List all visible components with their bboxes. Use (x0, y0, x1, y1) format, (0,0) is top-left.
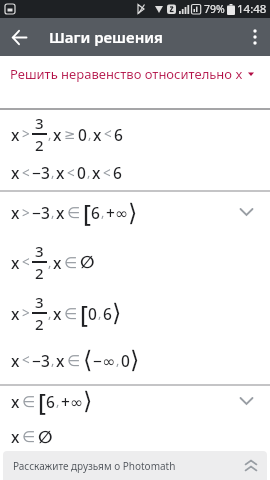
staticText: , (51, 204, 55, 221)
staticText: > (22, 304, 30, 322)
staticText: 6 (113, 162, 122, 183)
button[interactable]: x (0, 192, 270, 232)
staticText: ∈ (22, 428, 36, 445)
staticText: x (11, 252, 20, 273)
staticText: ∈ (22, 393, 36, 410)
staticText: ⟩ (130, 346, 140, 374)
staticText: x (53, 252, 62, 273)
staticText: ⟩ (83, 387, 93, 415)
button[interactable]: x (0, 160, 270, 184)
staticText: +∞ (106, 202, 128, 223)
staticText: x (53, 124, 62, 145)
staticText: x (53, 303, 62, 324)
staticText: ⟩ (128, 199, 138, 227)
staticText: [ (83, 196, 91, 229)
staticText: Решить неравенство относительно x (10, 65, 243, 83)
staticText: x (11, 124, 20, 145)
staticText: 2 (35, 263, 44, 283)
staticText: , (48, 305, 52, 322)
staticText: x (11, 391, 20, 412)
staticText: x (92, 162, 101, 183)
staticText: 6 (91, 202, 100, 223)
button[interactable]: x (0, 111, 270, 157)
staticText: > (22, 204, 30, 222)
staticText: 2 (35, 135, 44, 155)
staticText: 6 (114, 124, 123, 145)
button[interactable]: x (0, 340, 270, 380)
staticText: , (88, 126, 92, 143)
staticText: −3 (32, 162, 50, 183)
staticText: x (11, 426, 20, 447)
staticText: ⟨ (83, 346, 93, 374)
staticText: ≥ (64, 126, 76, 142)
staticText: 79% (204, 2, 225, 16)
staticText: , (51, 164, 55, 181)
staticText: +∞ (61, 391, 83, 412)
staticText: ∈ (64, 305, 78, 322)
staticText: < (103, 164, 111, 182)
staticText: 3 (35, 241, 44, 261)
staticText: x (11, 202, 20, 223)
staticText: 3 (35, 292, 44, 312)
staticText: 0 (88, 303, 97, 324)
staticText: 0 (78, 124, 87, 145)
button[interactable]: Расскажите друзьям о Photomath (3, 451, 267, 480)
staticText: x (11, 350, 20, 371)
staticText: −3 (32, 202, 50, 223)
staticText: x (56, 162, 65, 183)
staticText: > (22, 125, 30, 143)
staticText: < (104, 125, 112, 143)
staticText: x (11, 162, 20, 183)
staticText: [ (38, 385, 46, 417)
staticText: , (56, 393, 60, 410)
staticText: 6 (103, 303, 112, 324)
button[interactable]: x (0, 239, 270, 285)
staticText: x (11, 303, 20, 324)
staticText: Расскажите друзьям о Photomath (13, 459, 176, 473)
staticText: 6 (46, 391, 55, 412)
staticText: 3 (35, 113, 44, 133)
button[interactable]: x (0, 290, 270, 336)
button[interactable]: x (0, 385, 270, 417)
staticText: , (87, 164, 91, 181)
staticText: < (22, 164, 30, 182)
staticText: [ (80, 297, 88, 330)
staticText: ⟩ (112, 299, 122, 327)
staticText: −∞ (93, 350, 115, 371)
staticText: ∅ (80, 252, 95, 272)
staticText: < (22, 253, 30, 271)
staticText: x (56, 202, 65, 223)
staticText: ∅ (38, 427, 53, 447)
staticText: , (116, 352, 120, 369)
staticText: < (67, 164, 75, 182)
staticText: , (48, 126, 52, 143)
staticText: 14:48 (237, 1, 267, 17)
button[interactable]: x (0, 420, 270, 452)
button[interactable]: Решить неравенство относительно x (0, 56, 270, 92)
staticText: ∈ (67, 352, 81, 369)
staticText: −3 (32, 350, 50, 371)
staticText: < (22, 351, 30, 369)
staticText: ∈ (64, 254, 78, 271)
staticText: Шаги решения (49, 27, 163, 47)
staticText: , (98, 305, 102, 322)
staticText: , (101, 204, 105, 221)
staticText: 0 (77, 162, 86, 183)
staticText: x (56, 350, 65, 371)
button[interactable] (242, 24, 268, 50)
staticText: , (48, 254, 52, 271)
staticText: , (51, 352, 55, 369)
staticText: 0 (121, 350, 130, 371)
staticText: 2 (35, 314, 44, 334)
staticText: x (93, 124, 102, 145)
button[interactable] (4, 22, 34, 52)
staticText: ∈ (67, 204, 81, 221)
